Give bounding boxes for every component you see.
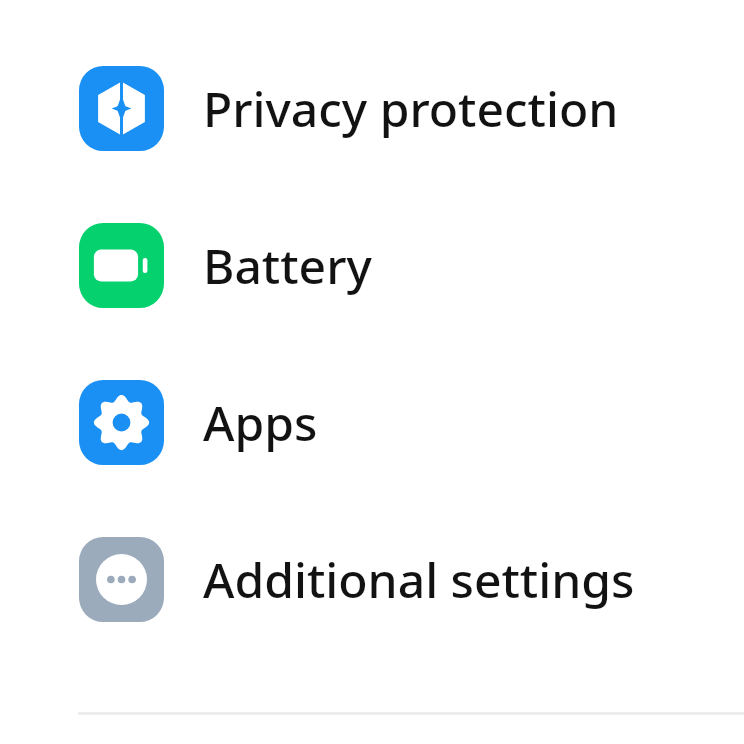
staticText: Battery (203, 233, 372, 298)
other: Additional settings (79, 537, 164, 622)
staticText: Privacy protection (203, 76, 619, 141)
button[interactable]: Apps (0, 380, 744, 465)
staticText: Additional settings (203, 547, 635, 612)
button[interactable]: Battery (0, 223, 744, 308)
button[interactable]: Additional settings (0, 537, 744, 622)
staticText: Apps (203, 390, 318, 455)
other: Battery (79, 223, 164, 308)
other: Privacy protection (79, 66, 164, 151)
other: Apps (79, 380, 164, 465)
button[interactable]: Privacy protection (0, 66, 744, 151)
